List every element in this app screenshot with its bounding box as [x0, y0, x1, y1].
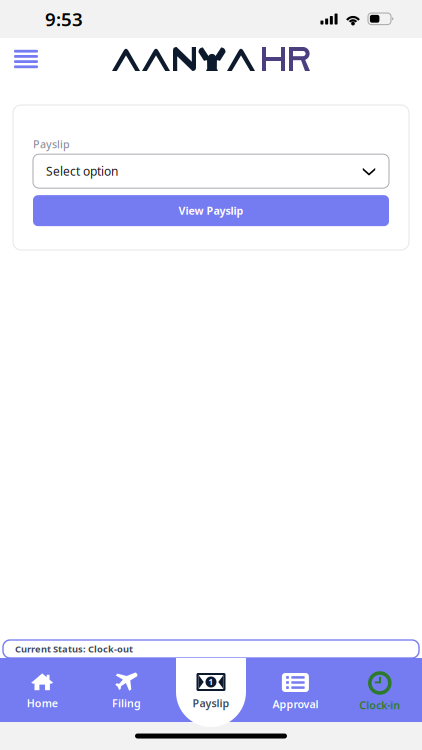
staticText: Payslip [192, 696, 229, 710]
staticText: Home [27, 696, 58, 710]
staticText: View Payslip [178, 204, 243, 218]
button[interactable]: Clock-in [338, 658, 422, 722]
staticText: Payslip [33, 137, 70, 151]
button[interactable]: Home [0, 658, 84, 722]
button[interactable]: Filing [84, 658, 169, 722]
button[interactable]: 1 [169, 658, 253, 722]
staticText: 1 [208, 677, 213, 687]
staticText: 9:53 [45, 7, 83, 31]
staticText: Clock-in [359, 698, 400, 712]
staticText: Select option [46, 163, 118, 179]
staticText: Approval [272, 697, 318, 711]
button[interactable]: Menu [0, 38, 52, 80]
staticText: Current Status: Clock-out [15, 643, 133, 655]
button[interactable]: View Payslip [33, 195, 389, 226]
button[interactable]: Select option [33, 154, 389, 188]
staticText: Filing [112, 696, 141, 710]
button[interactable]: Approval [253, 658, 338, 722]
